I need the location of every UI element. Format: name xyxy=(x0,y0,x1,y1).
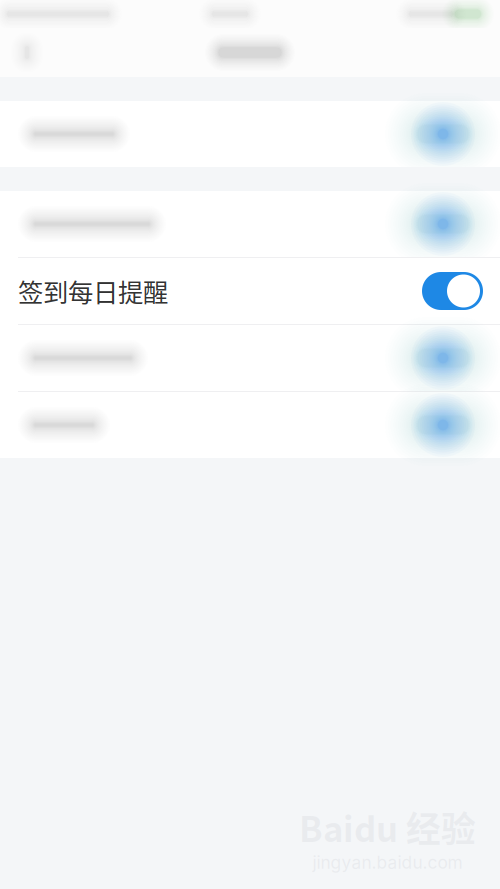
button[interactable]: 签到每日提醒 xyxy=(0,258,500,324)
button[interactable]: Back xyxy=(0,28,54,77)
staticText: Baidu 经验 xyxy=(299,802,476,852)
button[interactable] xyxy=(0,325,500,391)
staticText: jingyan.baidu.com xyxy=(312,852,462,873)
button[interactable] xyxy=(0,191,500,257)
button[interactable] xyxy=(0,101,500,167)
button[interactable] xyxy=(0,392,500,458)
staticText: 签到每日提醒 xyxy=(18,273,168,309)
